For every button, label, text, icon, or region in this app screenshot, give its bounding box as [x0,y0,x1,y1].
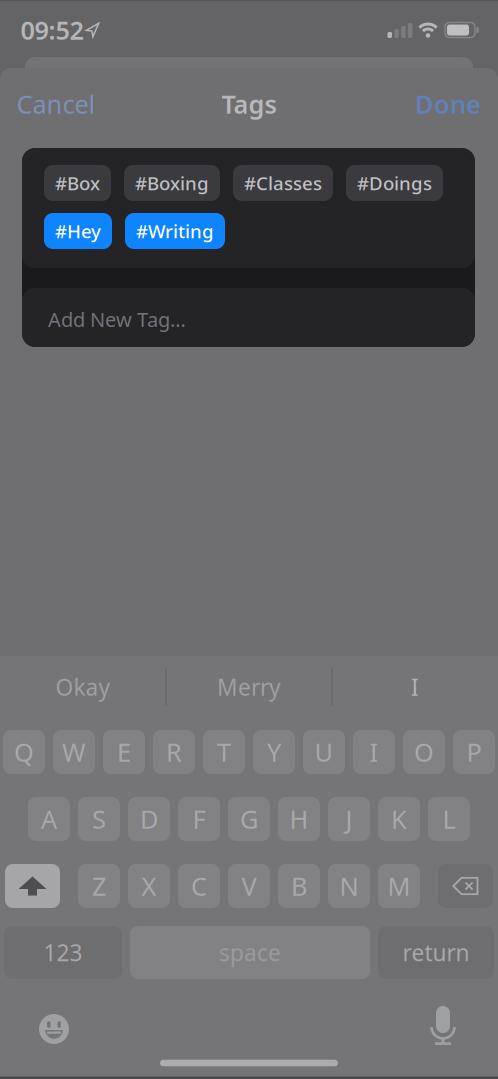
button[interactable]: Y [253,730,295,774]
button[interactable]: V [228,864,270,908]
button[interactable]: space [130,926,370,979]
button[interactable]: A [28,797,70,841]
button[interactable]: K [378,797,420,841]
button[interactable]: I [353,730,395,774]
staticText: I [411,672,419,702]
staticText: Tags [221,87,276,121]
button[interactable]: #Hey [44,213,112,249]
staticText: Done [415,87,481,121]
button[interactable]: Shift [5,864,60,908]
button[interactable]: Merry [169,665,329,709]
staticText: return [402,937,469,967]
staticText: #Box [55,171,100,195]
button[interactable]: Emoji [39,1014,69,1044]
staticText: T [217,735,231,769]
button[interactable]: Cancel [16,87,95,121]
staticText: Y [267,735,281,769]
staticText: #Hey [55,219,101,243]
button[interactable]: Dictation [427,1006,459,1046]
button[interactable]: W [53,730,95,774]
button[interactable]: C [178,864,220,908]
button[interactable]: R [153,730,195,774]
button[interactable]: N [328,864,370,908]
staticText: Merry [217,672,281,702]
button[interactable]: Z [78,864,120,908]
button[interactable]: M [378,864,420,908]
button[interactable]: U [303,730,345,774]
button[interactable]: T [203,730,245,774]
staticText: C [191,869,207,903]
button[interactable]: F [178,797,220,841]
button[interactable]: P [453,730,495,774]
staticText: D [140,802,158,836]
button[interactable]: D [128,797,170,841]
staticText: O [414,735,434,769]
button[interactable]: Q [3,730,45,774]
staticText: R [166,735,182,769]
staticText: W [62,735,86,769]
button[interactable]: O [403,730,445,774]
staticText: #Boxing [135,171,209,195]
button[interactable]: Okay [3,665,163,709]
button[interactable]: #Boxing [124,165,220,201]
staticText: #Doings [357,171,432,195]
staticText: V [241,869,256,903]
staticText: Z [92,869,106,903]
staticText: E [117,735,131,769]
button[interactable]: #Box [44,165,111,201]
staticText: H [289,802,308,836]
staticText: I [369,735,378,769]
button[interactable]: G [228,797,270,841]
staticText: Q [14,735,34,769]
staticText: space [219,937,281,967]
button[interactable]: Delete [438,864,493,908]
staticText: B [291,869,307,903]
button[interactable]: #Classes [233,165,333,201]
button[interactable]: #Writing [125,213,225,249]
staticText: 09:52 [20,13,83,47]
staticText: G [240,802,258,836]
staticText: X [141,869,156,903]
staticText: U [314,735,333,769]
button[interactable]: X [128,864,170,908]
button[interactable]: B [278,864,320,908]
staticText: #Writing [136,219,214,243]
button[interactable]: H [278,797,320,841]
button[interactable]: I [335,665,495,709]
staticText: Okay [55,672,110,702]
staticText: 123 [43,937,82,967]
staticText: F [192,802,205,836]
staticText: Add New Tag… [48,306,186,333]
staticText: K [391,802,407,836]
button[interactable]: L [428,797,470,841]
staticText: L [442,802,455,836]
button[interactable]: Add New Tag… [22,288,475,347]
button[interactable]: S [78,797,120,841]
staticText: #Classes [244,171,322,195]
button[interactable]: #Doings [346,165,443,201]
staticText: J [345,802,352,836]
button[interactable]: Done [415,87,481,121]
button[interactable]: E [103,730,145,774]
staticText: M [387,869,410,903]
button[interactable]: J [328,797,370,841]
button[interactable]: 123 [4,926,122,979]
staticText: A [41,802,57,836]
staticText: N [339,869,358,903]
staticText: Cancel [16,87,95,121]
staticText: P [466,735,481,769]
staticText: S [92,802,106,836]
button[interactable]: return [378,926,494,979]
